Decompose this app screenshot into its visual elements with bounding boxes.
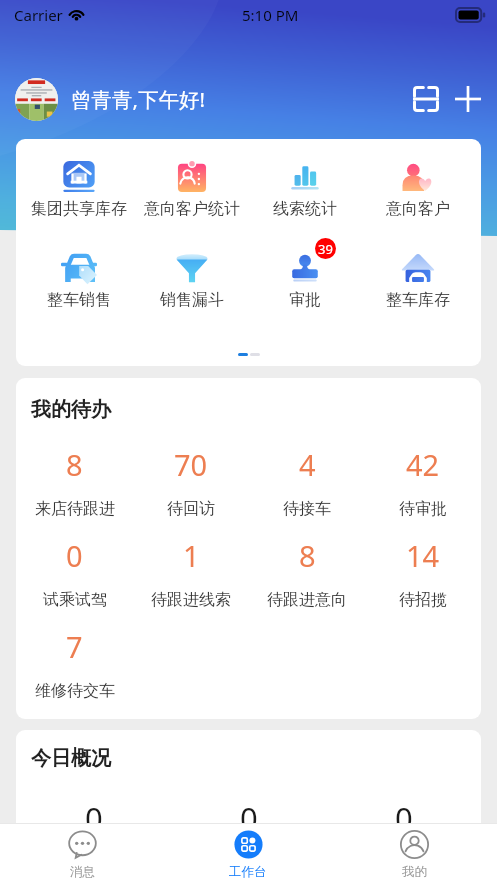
- button[interactable]: 8: [249, 536, 365, 610]
- button[interactable]: 消息: [0, 824, 165, 883]
- button[interactable]: 整车销售: [23, 252, 135, 310]
- button[interactable]: 我的: [331, 824, 497, 883]
- staticText: 待回访: [167, 499, 215, 519]
- staticText: 0: [66, 536, 83, 575]
- button[interactable]: 0: [16, 536, 133, 610]
- staticText: 7: [66, 627, 83, 666]
- button[interactable]: 1: [133, 536, 249, 610]
- staticText: 待招揽: [399, 590, 447, 610]
- staticText: 审批: [289, 290, 321, 310]
- button[interactable]: 39: [248, 252, 361, 310]
- staticText: 39: [318, 240, 333, 258]
- staticText: 消息: [70, 864, 95, 880]
- button[interactable]: 头像 Profile: [15, 78, 58, 121]
- button[interactable]: 8: [16, 445, 133, 519]
- staticText: 42: [406, 445, 440, 484]
- staticText: 线索统计: [273, 199, 337, 219]
- button[interactable]: 0: [326, 797, 481, 869]
- button[interactable]: 0: [171, 797, 326, 869]
- staticText: 8: [66, 445, 83, 484]
- staticText: 0: [240, 797, 258, 839]
- staticText: 待审批: [399, 499, 447, 519]
- button[interactable]: 4: [249, 445, 365, 519]
- button[interactable]: 线索统计: [248, 161, 361, 219]
- staticText: 我的待办: [31, 397, 111, 422]
- staticText: 今日进店: [372, 849, 436, 869]
- button[interactable]: 工作台: [165, 824, 331, 883]
- staticText: 今日进店: [62, 849, 126, 869]
- button[interactable]: 意向客户: [361, 161, 474, 219]
- button[interactable]: 70: [133, 445, 249, 519]
- staticText: 0: [85, 797, 103, 839]
- staticText: 整车库存: [386, 290, 450, 310]
- button[interactable]: 添加 Add: [450, 81, 486, 117]
- button[interactable]: 集团共享库存: [23, 161, 135, 219]
- staticText: 维修待交车: [35, 681, 115, 701]
- staticText: 整车销售: [47, 290, 111, 310]
- staticText: 8: [299, 536, 316, 575]
- staticText: 曾青青,下午好!: [71, 85, 206, 113]
- button[interactable]: 销售漏斗: [135, 252, 248, 310]
- staticText: 试乘试驾: [43, 590, 107, 610]
- staticText: 待跟进意向: [267, 590, 347, 610]
- staticText: 我的: [402, 864, 427, 880]
- button[interactable]: 7: [16, 627, 133, 701]
- button[interactable]: 0: [16, 797, 171, 869]
- staticText: 集团共享库存: [31, 199, 127, 219]
- button[interactable]: 扫一扫 Scan: [408, 81, 444, 117]
- staticText: 70: [174, 445, 208, 484]
- staticText: 工作台: [229, 864, 267, 880]
- staticText: 来店待跟进: [35, 499, 115, 519]
- staticText: 0: [395, 797, 413, 839]
- staticText: 1: [183, 536, 200, 575]
- staticText: 14: [406, 536, 440, 575]
- staticText: 销售漏斗: [160, 290, 224, 310]
- staticText: 今日概况: [31, 746, 111, 771]
- button[interactable]: 14: [365, 536, 481, 610]
- staticText: 今日进店: [217, 849, 281, 869]
- staticText: 4: [299, 445, 316, 484]
- button[interactable]: 意向客户统计: [135, 161, 248, 219]
- button[interactable]: 42: [365, 445, 481, 519]
- staticText: 待跟进线索: [151, 590, 231, 610]
- staticText: 意向客户统计: [144, 199, 240, 219]
- button[interactable]: 整车库存: [361, 252, 474, 310]
- staticText: 5:10 PM: [242, 5, 299, 25]
- staticText: 意向客户: [386, 199, 450, 219]
- staticText: Carrier: [14, 5, 63, 25]
- staticText: 待接车: [283, 499, 331, 519]
